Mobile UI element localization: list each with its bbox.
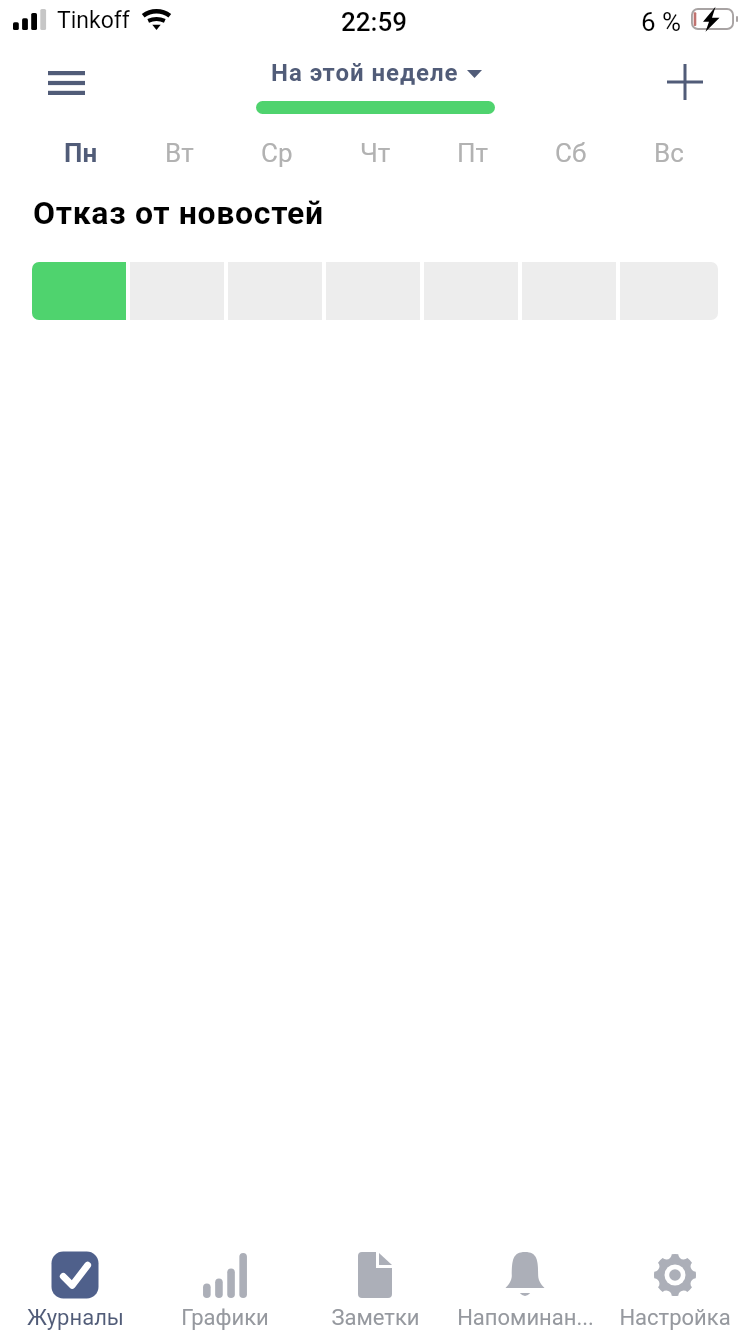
button[interactable]: Пн [32, 131, 130, 175]
staticText: Пт [457, 138, 489, 168]
staticText: Журналы [27, 1305, 124, 1331]
button[interactable]: Чт [326, 131, 424, 175]
button[interactable]: Ср [228, 131, 326, 175]
staticText: Заметки [331, 1305, 420, 1331]
staticText: Пн [64, 138, 98, 168]
button[interactable]: Пт [424, 131, 522, 175]
staticText: Ср [261, 138, 293, 168]
staticText: Напоминан... [457, 1305, 594, 1331]
button[interactable] [32, 262, 718, 320]
staticText: Сб [555, 138, 587, 168]
button[interactable]: На этой неделе [261, 58, 493, 98]
staticText: 22:59 [341, 7, 408, 37]
button[interactable]: Вт [130, 131, 228, 175]
button[interactable]: Вс [620, 131, 718, 175]
staticText: Вс [654, 138, 684, 168]
button[interactable]: Настройка [600, 1243, 750, 1334]
staticText: Графики [181, 1305, 269, 1331]
staticText: 6 % [641, 7, 682, 37]
button[interactable]: Журналы [0, 1243, 150, 1334]
staticText: На этой неделе [271, 59, 459, 87]
staticText: Чт [360, 138, 391, 168]
button[interactable]: Напоминан... [450, 1243, 600, 1334]
button[interactable]: Графики [150, 1243, 300, 1334]
button[interactable]: Сб [522, 131, 620, 175]
staticText: Настройка [619, 1305, 731, 1331]
button[interactable]: Заметки [300, 1243, 450, 1334]
button[interactable]: Add [655, 52, 715, 112]
staticText: Tinkoff [57, 7, 130, 34]
staticText: Вт [165, 138, 194, 168]
button[interactable]: Menu [26, 53, 106, 113]
staticText: Отказ от новостей [33, 194, 324, 232]
